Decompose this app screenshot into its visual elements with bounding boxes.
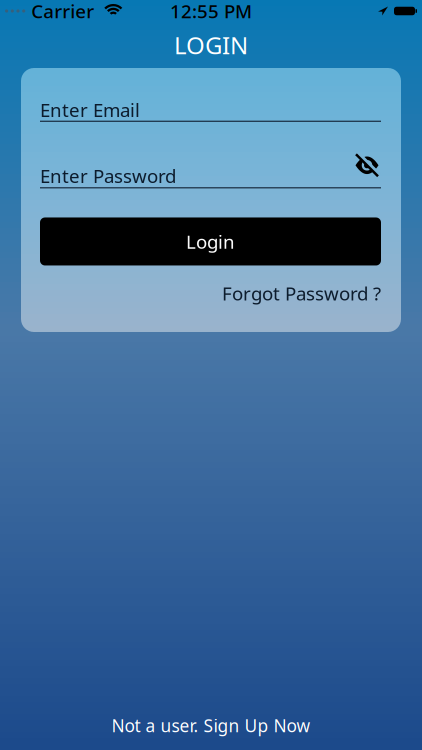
button[interactable]: Enter Password — [40, 163, 381, 189]
staticText: Forgot Password ? — [222, 281, 381, 306]
staticText: 12:55 PM — [170, 0, 252, 23]
button[interactable]: Forgot Password ? — [222, 281, 381, 306]
staticText: LOGIN — [174, 29, 248, 61]
staticText: Enter Password — [40, 163, 176, 188]
button[interactable]: Login — [40, 217, 381, 265]
staticText: Login — [186, 229, 235, 254]
button[interactable]: Not a user. Sign Up Now — [111, 714, 310, 737]
staticText: Enter Email — [40, 97, 140, 122]
button[interactable]: Enter Email — [40, 97, 381, 123]
button[interactable] — [355, 164, 381, 188]
staticText: Carrier — [31, 0, 94, 23]
staticText: Not a user. Sign Up Now — [111, 714, 310, 737]
